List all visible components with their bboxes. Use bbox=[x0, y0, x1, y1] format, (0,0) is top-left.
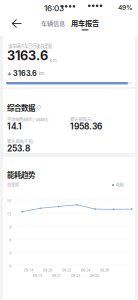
staticText: 总里程 bbox=[7, 182, 19, 188]
staticText: 15 bbox=[7, 198, 11, 203]
staticText: km bbox=[39, 71, 45, 76]
staticText: 能耗趋势 bbox=[7, 169, 35, 180]
staticText: km bbox=[49, 57, 56, 63]
staticText: 09.15 bbox=[33, 273, 42, 278]
staticText: 3 bbox=[9, 250, 11, 255]
staticText: 09.22 bbox=[62, 268, 71, 272]
staticText: 0 bbox=[9, 263, 12, 268]
staticText: 09.23 bbox=[71, 273, 80, 278]
staticText: 车辆信息 bbox=[41, 19, 65, 27]
staticText: 49% bbox=[118, 3, 133, 12]
staticText: 平均电耗(kWh/100km) bbox=[7, 116, 48, 122]
staticText: 累计省钱(元) bbox=[70, 116, 92, 122]
staticText: 253.8 bbox=[7, 143, 30, 153]
staticText: 用车报告 bbox=[71, 18, 99, 28]
staticText: 09.26 bbox=[100, 268, 109, 272]
staticText: 16:03 bbox=[44, 3, 64, 13]
staticText: 09.20 bbox=[43, 268, 52, 272]
staticText: 09.21 bbox=[52, 273, 61, 278]
staticText: 3163.6 bbox=[13, 69, 37, 78]
staticText: 14.1 bbox=[7, 121, 22, 131]
staticText: 该车辆汽车已行驶总里程 bbox=[8, 42, 52, 49]
staticText: 09.25 bbox=[90, 273, 99, 278]
staticText: 累计减排(千克) bbox=[7, 138, 33, 144]
staticText: 综合数据 bbox=[7, 102, 35, 113]
staticText: 09.24 bbox=[81, 268, 90, 272]
staticText: 1958.36 bbox=[70, 121, 102, 131]
staticText: 3163.6 bbox=[7, 48, 48, 63]
button[interactable]: Back bbox=[10, 18, 24, 29]
staticText: 9 bbox=[9, 224, 11, 229]
staticText: 09.14 bbox=[24, 268, 33, 272]
staticText: 12 bbox=[7, 211, 11, 216]
staticText: 电耗 bbox=[116, 182, 124, 188]
button[interactable]: 车辆信息 bbox=[41, 19, 66, 27]
button[interactable]: 用车报告 bbox=[71, 18, 99, 30]
staticText: 6 bbox=[9, 237, 11, 242]
